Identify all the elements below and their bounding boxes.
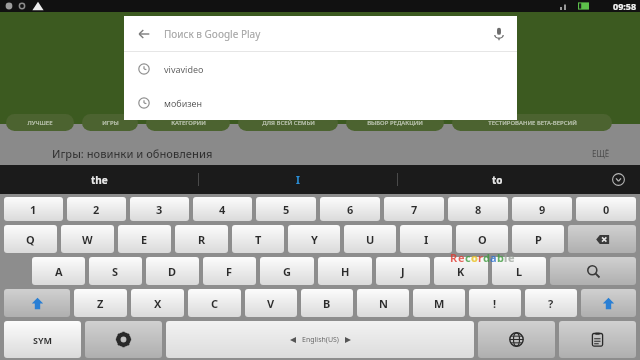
staticText: W xyxy=(82,232,93,247)
staticText: 5 xyxy=(283,202,290,217)
button[interactable]: Search xyxy=(550,257,636,285)
button[interactable]: T xyxy=(232,225,284,253)
staticText: F xyxy=(226,264,233,279)
staticText: e xyxy=(508,250,515,265)
button[interactable]: мобизен xyxy=(124,86,517,120)
staticText: l xyxy=(504,250,508,265)
staticText: I xyxy=(296,173,300,187)
button[interactable]: 4 xyxy=(193,197,252,221)
button[interactable]: 5 xyxy=(256,197,316,221)
button[interactable]: R xyxy=(175,225,228,253)
staticText: 09:58 xyxy=(613,0,637,12)
staticText: Q xyxy=(26,232,35,247)
staticText: I xyxy=(424,232,429,247)
staticText: e xyxy=(458,250,465,265)
button[interactable]: Change language xyxy=(478,321,555,358)
button[interactable]: 1 xyxy=(4,197,63,221)
button[interactable]: Clipboard xyxy=(559,321,636,358)
button[interactable]: vivavideo xyxy=(124,52,517,86)
button[interactable]: 6 xyxy=(320,197,380,221)
staticText: 1 xyxy=(30,202,37,217)
button[interactable]: N xyxy=(357,289,409,317)
button[interactable]: ИГРЫ xyxy=(82,114,138,131)
button[interactable]: Space xyxy=(166,321,474,358)
button[interactable]: Settings xyxy=(85,321,162,358)
button[interactable]: to xyxy=(398,165,596,194)
staticText: ТЕСТИРОВАНИЕ БЕТА-ВЕРСИЙ xyxy=(488,119,577,127)
button[interactable]: ВЫБОР РЕДАКЦИИ xyxy=(346,114,444,131)
button[interactable]: V xyxy=(245,289,297,317)
staticText: Y xyxy=(311,232,318,247)
staticText: U xyxy=(366,232,375,247)
button[interactable]: Back xyxy=(124,16,517,51)
staticText: E xyxy=(141,232,148,247)
staticText: C xyxy=(211,296,219,311)
button[interactable]: 8 xyxy=(448,197,508,221)
button[interactable]: Hide suggestions xyxy=(596,165,640,194)
button[interactable]: 2 xyxy=(67,197,126,221)
staticText: T xyxy=(255,232,262,247)
button[interactable]: Voice search xyxy=(481,16,517,51)
staticText: d xyxy=(483,250,490,265)
button[interactable]: F xyxy=(203,257,256,285)
button[interactable]: L xyxy=(492,257,546,285)
button[interactable]: the xyxy=(0,165,198,194)
staticText: K xyxy=(457,264,465,279)
button[interactable]: Q xyxy=(4,225,57,253)
button[interactable]: M xyxy=(413,289,465,317)
button[interactable]: ДЛЯ ВСЕЙ СЕМЬИ xyxy=(238,114,338,131)
button[interactable]: 0 xyxy=(576,197,636,221)
button[interactable]: 9 xyxy=(512,197,572,221)
staticText: B xyxy=(323,296,331,311)
staticText: S xyxy=(112,264,119,279)
staticText: ? xyxy=(548,296,554,311)
staticText: ДЛЯ ВСЕЙ СЕМЬИ xyxy=(262,119,315,127)
button[interactable]: G xyxy=(260,257,314,285)
button[interactable]: P xyxy=(512,225,564,253)
button[interactable]: I xyxy=(199,165,397,194)
staticText: ! xyxy=(493,296,497,311)
button[interactable]: A xyxy=(32,257,85,285)
staticText: the xyxy=(91,173,108,187)
button[interactable]: J xyxy=(376,257,430,285)
button[interactable]: S xyxy=(89,257,142,285)
staticText: G xyxy=(283,264,291,279)
staticText: ЛУЧШЕЕ xyxy=(27,119,53,127)
button[interactable]: E xyxy=(118,225,171,253)
button[interactable]: B xyxy=(301,289,353,317)
button[interactable]: Shift xyxy=(4,289,70,317)
button[interactable]: U xyxy=(344,225,396,253)
button[interactable]: 3 xyxy=(130,197,189,221)
staticText: Z xyxy=(97,296,104,311)
staticText: 8 xyxy=(475,202,482,217)
button[interactable]: Z xyxy=(74,289,127,317)
staticText: M xyxy=(434,296,445,311)
button[interactable]: O xyxy=(456,225,508,253)
staticText: 7 xyxy=(411,202,418,217)
button[interactable]: КАТЕГОРИИ xyxy=(146,114,230,131)
button[interactable]: ! xyxy=(469,289,521,317)
button[interactable]: W xyxy=(61,225,114,253)
button[interactable]: X xyxy=(131,289,184,317)
button[interactable]: H xyxy=(318,257,372,285)
button[interactable]: K xyxy=(434,257,488,285)
button[interactable]: ЛУЧШЕЕ xyxy=(6,114,74,131)
staticText: P xyxy=(535,232,542,247)
button[interactable]: ТЕСТИРОВАНИЕ БЕТА-ВЕРСИЙ xyxy=(452,114,612,131)
staticText: a xyxy=(490,250,497,265)
staticText: c xyxy=(465,250,471,265)
button[interactable]: 7 xyxy=(384,197,444,221)
button[interactable]: Y xyxy=(288,225,340,253)
staticText: 9 xyxy=(539,202,546,217)
staticText: SYM xyxy=(33,334,53,346)
staticText: 4 xyxy=(219,202,226,217)
button[interactable]: C xyxy=(188,289,241,317)
button[interactable]: SYM xyxy=(4,321,81,358)
staticText: vivavideo xyxy=(164,63,204,75)
button[interactable]: Back xyxy=(124,16,164,51)
button[interactable]: Backspace xyxy=(568,225,636,253)
button[interactable]: I xyxy=(400,225,452,253)
button[interactable]: D xyxy=(146,257,199,285)
button[interactable]: ? xyxy=(525,289,577,317)
button[interactable]: Shift right xyxy=(581,289,636,317)
